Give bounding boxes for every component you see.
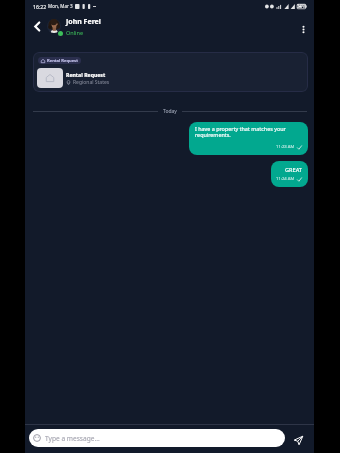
button[interactable]: Back <box>29 18 45 34</box>
staticText: I have a property that matches your requ… <box>195 125 303 139</box>
staticText: Today <box>163 108 177 115</box>
button[interactable]: I have a property that matches your requ… <box>189 122 308 155</box>
staticText: 16:22 <box>33 3 47 10</box>
staticText: Rental Request <box>66 71 106 78</box>
staticText: 11:24 AM <box>276 176 295 182</box>
staticText: 39% <box>297 3 307 9</box>
button[interactable]: Send <box>290 432 306 448</box>
staticText: Online <box>66 29 84 36</box>
staticText: Type a message... <box>45 434 100 443</box>
staticText: Rental Request <box>47 58 78 64</box>
button[interactable]: GREAT <box>271 161 308 187</box>
staticText: Mon, Mar 3 <box>48 3 73 9</box>
button[interactable]: Rental Request <box>33 52 308 92</box>
staticText: John Ferel <box>66 17 101 27</box>
staticText: Regional States <box>73 79 110 86</box>
button[interactable]: Type a message... <box>29 429 285 447</box>
staticText: GREAT <box>285 166 302 174</box>
button[interactable]: More options <box>295 21 311 37</box>
staticText: 11:23 AM <box>276 144 295 150</box>
